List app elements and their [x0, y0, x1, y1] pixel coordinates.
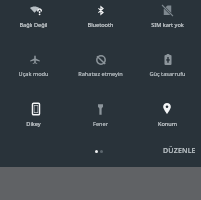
staticText: Güç tasarrufu [134, 70, 201, 78]
button[interactable]: Bağlı Değil [0, 0, 67, 49]
button[interactable]: Güç tasarrufu [134, 49, 201, 98]
staticText: Dikey [0, 120, 67, 128]
button[interactable]: Konum [134, 99, 201, 148]
button[interactable]: Fener [67, 99, 134, 148]
staticText: Bağlı Değil [0, 21, 67, 29]
staticText: Fener [67, 120, 134, 128]
staticText: Uçak modu [0, 70, 67, 78]
staticText: SIM kart yok [134, 21, 201, 29]
button[interactable]: Rahatsız etmeyin [67, 49, 134, 98]
button[interactable]: DÜZENLE [158, 142, 201, 160]
button[interactable]: Bluetooth [67, 0, 134, 49]
staticText: Rahatsız etmeyin [67, 70, 134, 78]
button[interactable]: SIM kart yok [134, 0, 201, 49]
staticText: DÜZENLE [163, 146, 196, 156]
staticText: Konum [134, 120, 201, 128]
staticText: Bluetooth [67, 21, 134, 29]
button[interactable]: Dikey [0, 99, 67, 148]
button[interactable]: Uçak modu [0, 49, 67, 98]
